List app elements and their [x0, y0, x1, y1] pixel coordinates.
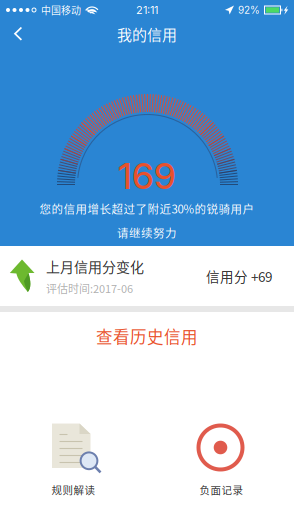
button[interactable]: 负面记录 [147, 423, 294, 522]
staticText: 中国移动 [41, 3, 81, 17]
staticText: 评估时间:2017-06 [46, 280, 133, 296]
staticText: 请继续努力 [117, 224, 177, 241]
button[interactable]: 查看历史信用 [0, 312, 294, 360]
staticText: 92% [238, 4, 260, 16]
staticText: 负面记录 [199, 482, 243, 497]
button[interactable]: Back [5, 19, 32, 48]
staticText: 169 [118, 154, 176, 198]
staticText: 信用分 +69 [206, 266, 272, 286]
staticText: 上月信用分变化 [46, 256, 144, 276]
button[interactable]: 规则解读 [0, 423, 147, 522]
staticText: 规则解读 [51, 482, 95, 497]
staticText: 我的信用 [117, 23, 177, 45]
staticText: 21:11 [136, 3, 158, 17]
staticText: 您的信用增长超过了附近30%的锐骑用户 [39, 200, 254, 217]
staticText: 查看历史信用 [96, 324, 198, 348]
button[interactable]: 上月信用分变化 [0, 246, 294, 306]
